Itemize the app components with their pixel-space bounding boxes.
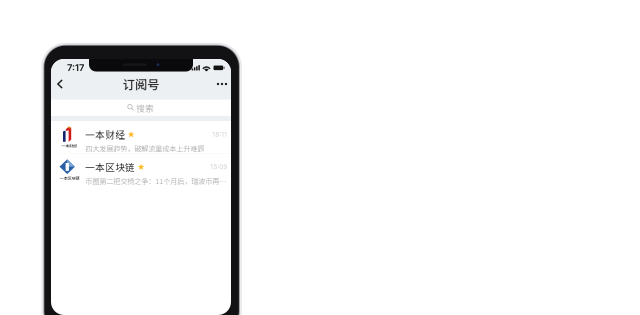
- staticText: 四大发展趋势，破解流量成本上升难题: [85, 143, 204, 153]
- staticText: 订阅号: [123, 75, 159, 93]
- staticText: 15:09: [210, 163, 227, 171]
- staticText: 7:17: [67, 62, 84, 73]
- button[interactable]: More: [214, 71, 230, 97]
- staticText: 一本区块链: [59, 175, 79, 181]
- staticText: 18:11: [212, 130, 227, 138]
- staticText: 搜索: [136, 102, 154, 114]
- staticText: 一本区块链: [85, 160, 135, 174]
- staticText: 一本财经: [85, 127, 125, 141]
- button[interactable]: 一本财经: [51, 121, 231, 153]
- button[interactable]: 搜索: [51, 100, 231, 116]
- staticText: 币圈第二把交椅之争：11个月后，瑞波币再…: [85, 176, 226, 186]
- button[interactable]: Back: [52, 71, 67, 97]
- staticText: 一本财经: [61, 143, 77, 149]
- button[interactable]: 一本区块链: [51, 153, 231, 186]
